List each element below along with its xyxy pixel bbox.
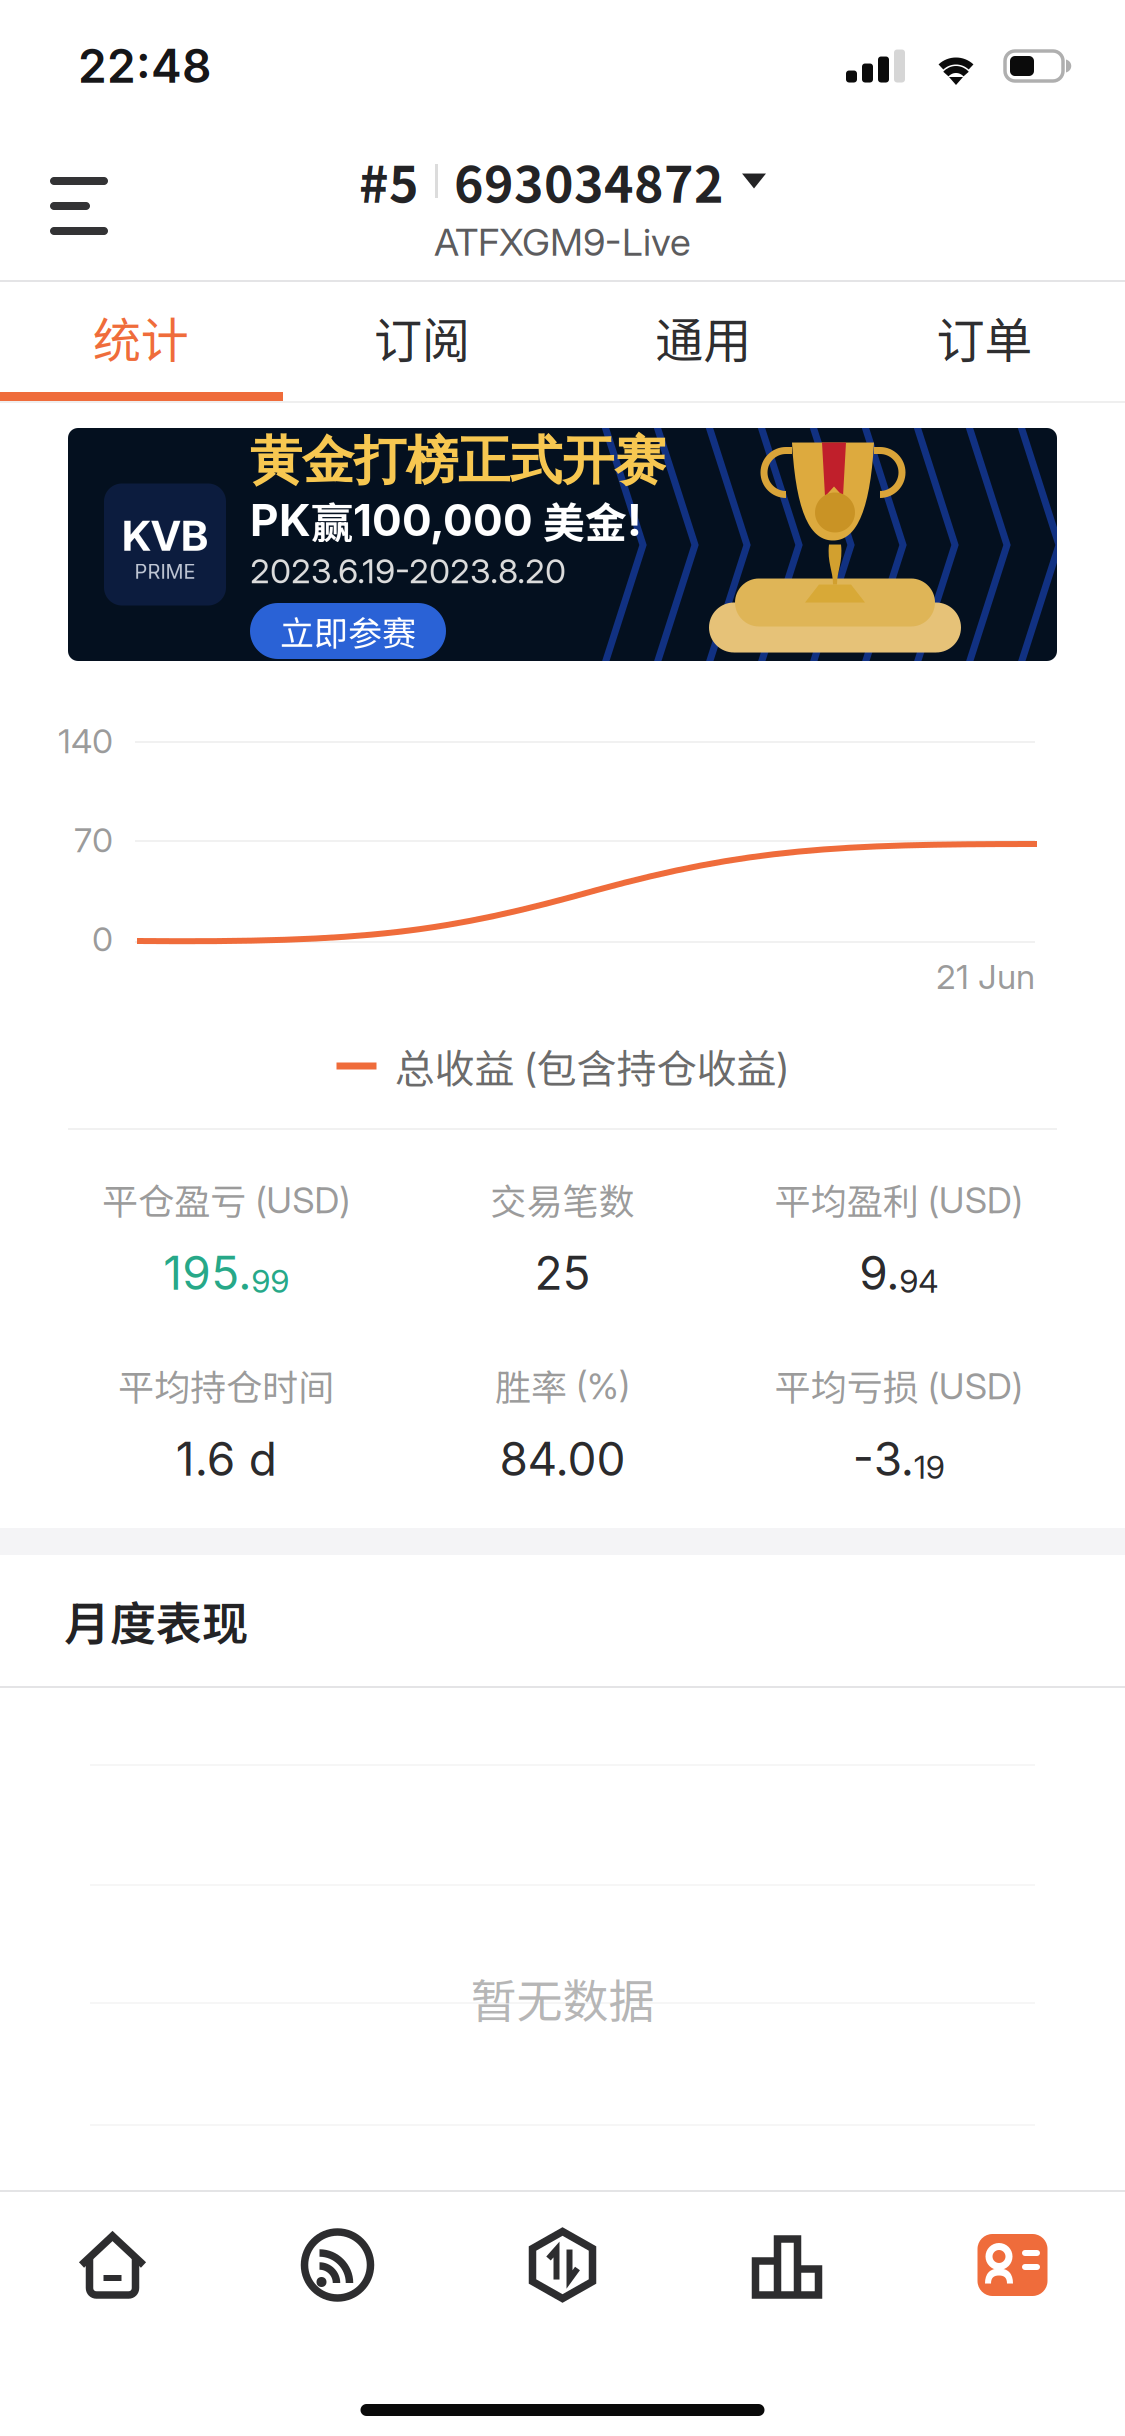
staticText: 19 [914,1448,945,1486]
staticText: 交易笔数 [490,1173,634,1225]
staticText: 统计 [93,302,189,372]
staticText: 22:48 [78,38,211,94]
staticText: ATFXGM9-Live [434,219,691,265]
staticText: 平均持仓时间 [118,1359,334,1411]
button[interactable]: Menu [0,145,168,267]
staticText: 100,000 [353,493,543,547]
staticText: -3. [853,1431,914,1487]
staticText: 94 [899,1262,938,1300]
staticText: #5 [359,145,419,217]
staticText: ! [627,493,642,547]
button[interactable]: 订阅 [281,282,562,392]
staticText: 月度表现 [64,1587,248,1654]
staticText: 立即参赛 [280,606,416,656]
staticText: 21 Jun [936,956,1035,997]
button[interactable]: 订单 [844,282,1125,392]
staticText: 胜率 (%) [495,1359,630,1411]
staticText: 0 [92,918,113,959]
staticText: 平均亏损 (USD) [775,1359,1023,1411]
button[interactable]: Home [0,2192,225,2338]
staticText: KVB [122,510,208,561]
staticText: 暂无数据 [470,1965,654,2031]
button[interactable]: KVB [0,428,1125,661]
staticText: 84.00 [499,1431,625,1487]
staticText: 订单 [936,302,1032,372]
staticText: 195. [163,1245,251,1301]
button[interactable]: Statistics [675,2192,900,2338]
staticText: 总收益 (包含持仓收益) [394,1037,788,1095]
button[interactable]: 通用 [562,282,844,392]
staticText: 1.6 d [176,1431,277,1487]
staticText: 赢 [311,490,353,550]
staticText: 订阅 [374,302,470,372]
button[interactable]: 统计 [0,282,281,392]
staticText: PRIME [134,559,195,584]
staticText: 黄金打榜正式开赛 [250,428,666,494]
button[interactable]: Signals [225,2192,450,2338]
staticText: 通用 [655,302,751,372]
staticText: 平仓盈亏 (USD) [102,1173,350,1225]
staticText: 99 [251,1262,289,1300]
button[interactable]: Profile [900,2192,1125,2338]
staticText: 140 [58,720,113,761]
staticText: 25 [534,1245,590,1301]
staticText: 9. [859,1245,899,1301]
button[interactable]: Trade [450,2192,675,2338]
staticText: PK [250,493,311,547]
staticText: 平均盈利 (USD) [775,1173,1023,1225]
staticText: 美金 [543,490,627,550]
staticText: 693034872 [454,145,724,217]
staticText: 70 [74,819,113,860]
staticText: 2023.6.19-2023.8.20 [250,550,566,591]
